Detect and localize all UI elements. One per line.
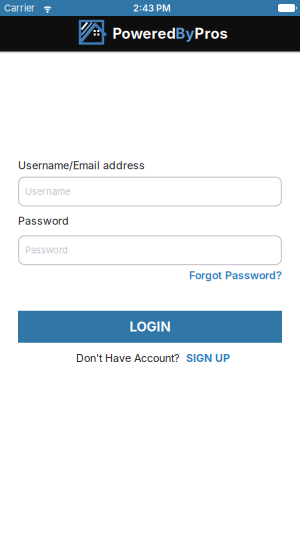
staticText: Powered bbox=[112, 25, 175, 42]
staticText: Don't Have Account? bbox=[76, 352, 179, 364]
textField[interactable]: Username bbox=[25, 186, 282, 197]
staticText: SIGN UP bbox=[186, 352, 230, 364]
staticText: Forgot Password? bbox=[189, 269, 282, 282]
button[interactable]: LOGIN bbox=[18, 311, 282, 343]
staticText: 2:43 PM bbox=[133, 2, 171, 13]
staticText: Password bbox=[18, 215, 69, 227]
button[interactable]: SIGN UP bbox=[186, 352, 230, 364]
staticText: Username bbox=[25, 186, 70, 197]
staticText: Password bbox=[25, 245, 68, 256]
staticText: By bbox=[175, 25, 194, 42]
secureTextField[interactable]: Password bbox=[25, 245, 282, 256]
staticText: Username bbox=[25, 186, 70, 197]
staticText: Carrier bbox=[4, 2, 35, 13]
staticText: Pros bbox=[194, 25, 227, 42]
staticText: Username/Email address bbox=[18, 159, 145, 172]
staticText: Password bbox=[25, 245, 68, 256]
button[interactable]: Forgot Password? bbox=[189, 269, 282, 282]
staticText: LOGIN bbox=[129, 319, 170, 335]
